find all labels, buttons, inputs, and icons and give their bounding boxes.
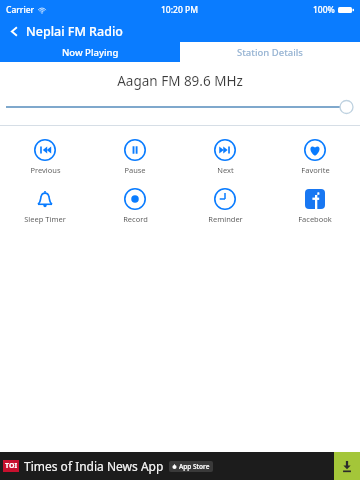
button[interactable]: Volume	[6, 99, 354, 115]
staticText: 10:20 PM	[161, 4, 198, 16]
staticText: Facebook	[298, 214, 332, 224]
staticText: Carrier	[6, 4, 35, 16]
staticText: Sleep Timer	[24, 214, 66, 224]
button[interactable]: Record	[90, 183, 180, 228]
staticText: Times of India News App	[24, 458, 164, 474]
button[interactable]: TOI	[0, 458, 334, 474]
button[interactable]: Back	[6, 23, 22, 39]
staticText: Record	[123, 214, 148, 224]
button[interactable]: Favorite	[270, 134, 360, 179]
button[interactable]: Sleep Timer	[0, 183, 90, 228]
button[interactable]: Station Details	[180, 42, 360, 62]
button[interactable]: Facebook	[270, 183, 360, 228]
staticText: Aagan FM 89.6 MHz	[0, 72, 360, 90]
button[interactable]: Now Playing	[0, 42, 180, 62]
staticText: Station Details	[237, 46, 303, 59]
staticText: TOI	[5, 461, 18, 471]
staticText: Pause	[124, 165, 146, 175]
button[interactable]: Reminder	[180, 183, 270, 228]
staticText: Reminder	[208, 214, 243, 224]
button[interactable]: Previous	[0, 134, 90, 179]
staticText: App Store	[179, 462, 210, 471]
staticText: Now Playing	[62, 46, 119, 59]
staticText: Previous	[30, 165, 61, 175]
staticText: Neplai FM Radio	[26, 23, 123, 40]
staticText: Favorite	[301, 165, 330, 175]
button[interactable]: Back	[0, 20, 360, 42]
staticText: 100%	[313, 4, 335, 16]
button[interactable]: Download	[334, 452, 360, 480]
button[interactable]: Pause	[90, 134, 180, 179]
staticText: Next	[217, 165, 234, 175]
button[interactable]: Next	[180, 134, 270, 179]
